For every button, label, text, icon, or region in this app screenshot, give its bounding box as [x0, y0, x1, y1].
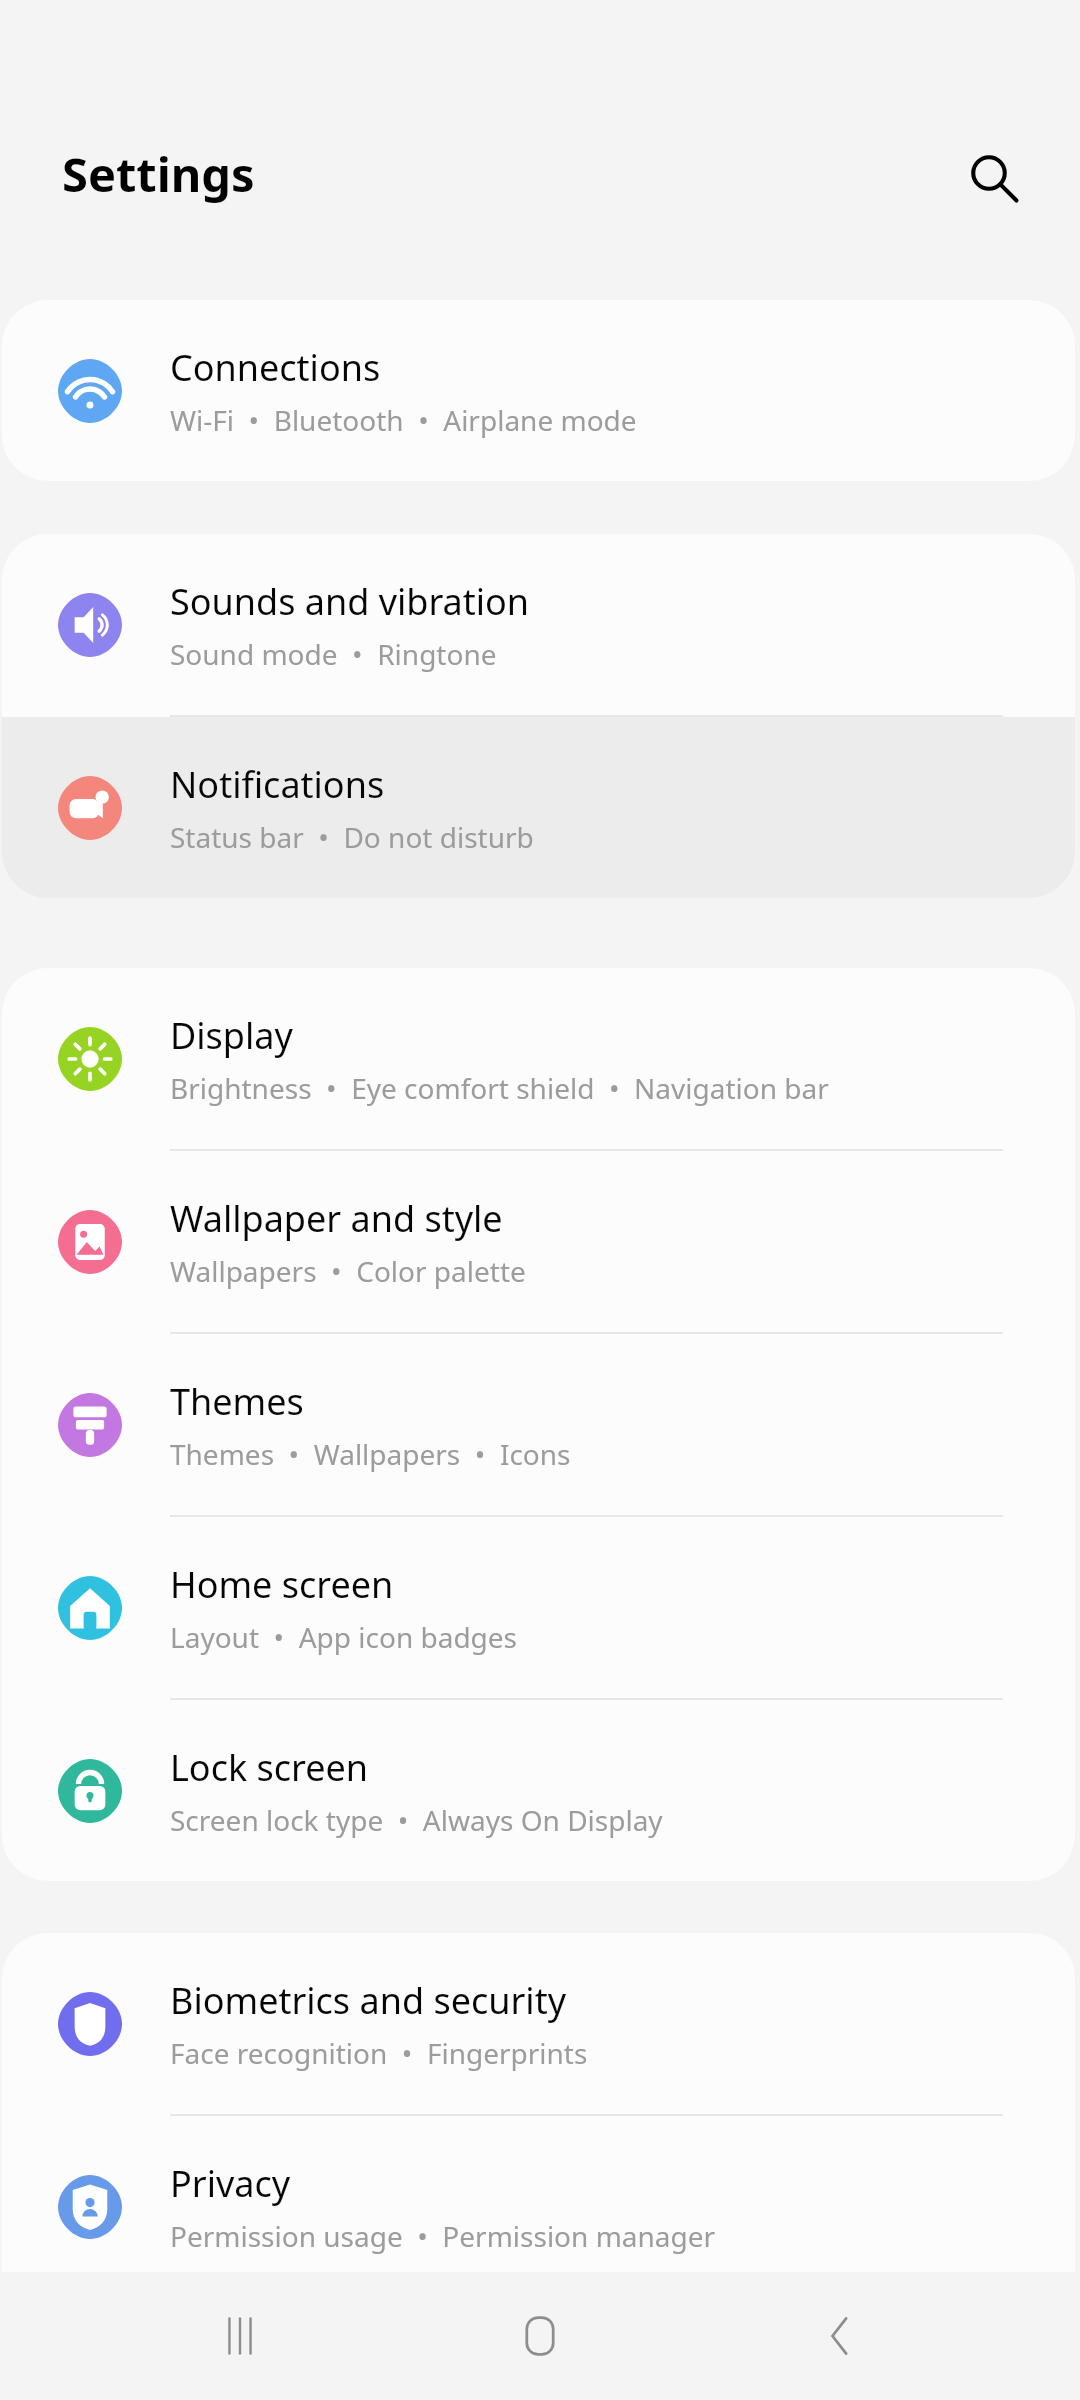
staticText: Status bar • Do not disturb	[170, 818, 534, 856]
staticText: Settings	[62, 142, 255, 206]
staticText: Themes	[170, 1377, 304, 1426]
button[interactable]: Home	[480, 2276, 600, 2396]
button[interactable]: Lock screen	[2, 1700, 1075, 1881]
staticText: Brightness • Eye comfort shield • Naviga…	[170, 1069, 829, 1107]
staticText: Layout • App icon badges	[170, 1618, 518, 1656]
staticText: Lock screen	[170, 1743, 369, 1792]
button[interactable]: Home screen	[2, 1517, 1075, 1698]
button[interactable]: Notifications	[2, 717, 1075, 898]
staticText: Face recognition • Fingerprints	[170, 2034, 588, 2072]
staticText: Privacy	[170, 2159, 291, 2208]
staticText: Wallpapers • Color palette	[170, 1252, 526, 1290]
staticText: Biometrics and security	[170, 1976, 567, 2025]
button[interactable]: Display	[2, 968, 1075, 1149]
button[interactable]: Themes	[2, 1334, 1075, 1515]
staticText: Wallpaper and style	[170, 1194, 503, 1243]
button[interactable]: Back	[780, 2276, 900, 2396]
staticText: Sound mode • Ringtone	[170, 635, 497, 673]
staticText: Connections	[170, 343, 381, 392]
button[interactable]: Recents	[180, 2276, 300, 2396]
button[interactable]: Wallpaper and style	[2, 1151, 1075, 1332]
staticText: Screen lock type • Always On Display	[170, 1801, 663, 1839]
button[interactable]: Privacy	[2, 2116, 1075, 2297]
staticText: Display	[170, 1011, 293, 1060]
button[interactable]: Connections	[2, 300, 1075, 481]
staticText: Wi-Fi • Bluetooth • Airplane mode	[170, 401, 637, 439]
staticText: Permission usage • Permission manager	[170, 2217, 716, 2255]
staticText: Home screen	[170, 1560, 394, 1609]
staticText: Sounds and vibration	[170, 577, 530, 626]
staticText: Themes • Wallpapers • Icons	[170, 1435, 571, 1473]
staticText: Notifications	[170, 760, 385, 809]
button[interactable]: Sounds and vibration	[2, 534, 1075, 715]
button[interactable]: Search	[948, 132, 1040, 224]
button[interactable]: Biometrics and security	[2, 1933, 1075, 2114]
